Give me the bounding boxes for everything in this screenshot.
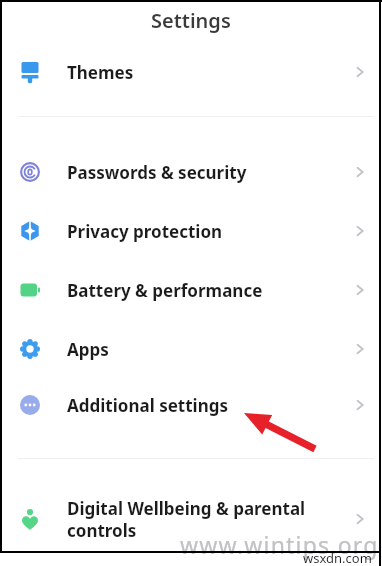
- button[interactable]: Apps: [0, 321, 382, 377]
- button[interactable]: Themes: [0, 44, 382, 100]
- button[interactable]: Battery & performance: [0, 262, 382, 318]
- staticText: Settings: [151, 7, 231, 34]
- button[interactable]: Additional settings: [0, 377, 382, 433]
- button[interactable]: Digital Wellbeing & parental controls: [0, 491, 382, 547]
- staticText: Privacy protection: [67, 220, 354, 243]
- staticText: Themes: [67, 61, 354, 84]
- staticText: Passwords & security: [67, 161, 354, 184]
- staticText: Digital Wellbeing & parental controls: [67, 497, 354, 542]
- staticText: Additional settings: [67, 394, 354, 417]
- staticText: wsxdn.com: [303, 549, 372, 566]
- staticText: www.wintips.org: [180, 529, 379, 560]
- staticText: Battery & performance: [67, 279, 354, 302]
- button[interactable]: Privacy protection: [0, 203, 382, 259]
- staticText: Apps: [67, 338, 354, 361]
- button[interactable]: Passwords & security: [0, 144, 382, 200]
